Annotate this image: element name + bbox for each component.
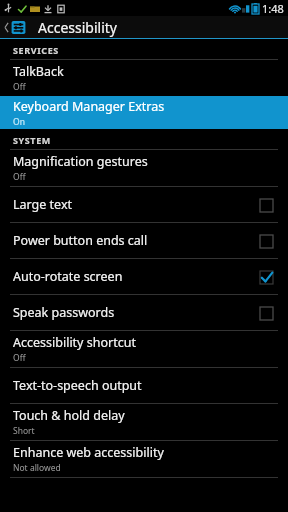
staticText: Magnification gestures — [13, 153, 148, 170]
staticText: Enhance web accessibility — [13, 444, 164, 461]
button[interactable]: Accessibility shortcut — [0, 331, 288, 367]
staticText: Accessibility — [38, 18, 117, 37]
staticText: Power button ends call — [13, 232, 148, 249]
staticText: Not allowed — [13, 462, 61, 474]
staticText: TalkBack — [13, 63, 64, 80]
staticText: Off — [13, 352, 26, 364]
staticText: SYSTEM — [13, 134, 51, 146]
button[interactable]: Speak passwords — [0, 295, 288, 330]
staticText: Keyboard Manager Extras — [13, 98, 165, 115]
button[interactable]: Keyboard Manager Extras — [0, 96, 288, 129]
button[interactable]: TalkBack — [0, 60, 288, 96]
staticText: Off — [13, 171, 26, 183]
button[interactable]: Magnification gestures — [0, 150, 288, 186]
staticText: Auto-rotate screen — [13, 268, 123, 285]
staticText: 1:48 — [262, 1, 284, 16]
button[interactable]: Text-to-speech output — [0, 368, 288, 403]
button[interactable]: Auto-rotate screen — [0, 259, 288, 294]
button[interactable]: Enhance web accessibility — [0, 441, 288, 477]
staticText: Short — [13, 425, 35, 437]
button[interactable]: Large text — [0, 187, 288, 222]
staticText: Off — [13, 81, 26, 93]
staticText: Text-to-speech output — [13, 377, 142, 394]
staticText: Touch & hold delay — [13, 407, 125, 424]
staticText: Accessibility shortcut — [13, 334, 136, 351]
staticText: SERVICES — [13, 44, 59, 56]
staticText: Speak passwords — [13, 304, 115, 321]
button[interactable]: Navigate up — [0, 16, 30, 38]
button[interactable]: Touch & hold delay — [0, 404, 288, 440]
staticText: Large text — [13, 196, 73, 213]
staticText: On — [13, 116, 25, 128]
button[interactable]: Power button ends call — [0, 223, 288, 258]
